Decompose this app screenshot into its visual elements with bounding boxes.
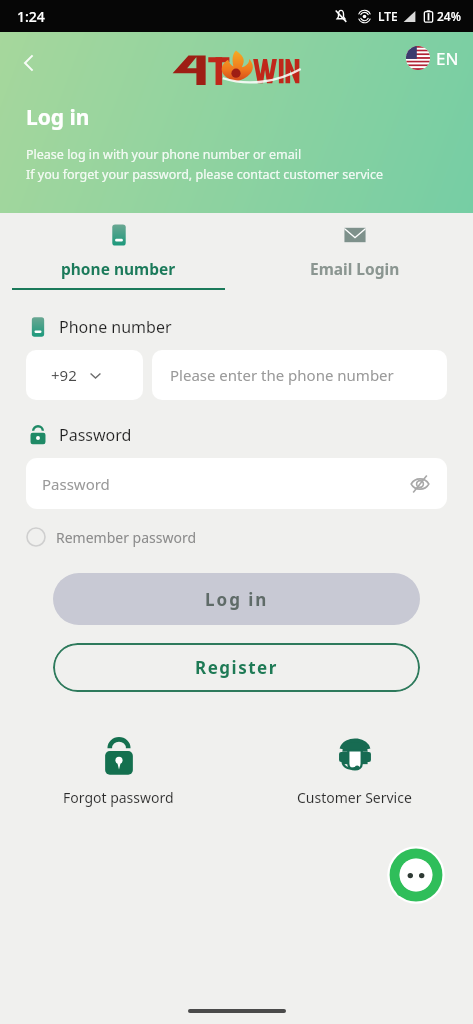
staticText: EN (436, 47, 459, 70)
staticText: Please log in with your phone number or … (26, 146, 302, 163)
staticText: phone number (61, 258, 176, 279)
button[interactable]: Show password (407, 471, 433, 497)
button[interactable]: Customer Service (291, 730, 418, 813)
button[interactable]: Log in (53, 573, 420, 625)
staticText: Log in (26, 103, 90, 132)
button[interactable]: Please enter the phone number (152, 350, 447, 400)
staticText: Password (59, 424, 132, 446)
staticText: Log in (205, 588, 269, 611)
staticText: 1:24 (17, 7, 45, 26)
staticText: If you forget your password, please cont… (26, 166, 384, 183)
staticText: Forgot password (63, 788, 174, 807)
staticText: LTE (378, 8, 398, 24)
button[interactable]: Live chat support (386, 845, 446, 905)
staticText: Phone number (59, 316, 172, 338)
button[interactable]: phone number (0, 213, 236, 290)
staticText: 24% (437, 8, 461, 24)
button[interactable]: Forgot password (57, 730, 180, 813)
button[interactable]: Password (26, 458, 447, 509)
staticText: Register (195, 656, 278, 679)
button[interactable]: Back (8, 42, 50, 84)
staticText: Remember password (56, 528, 197, 547)
staticText: Password (42, 474, 110, 494)
button[interactable]: +92 (26, 350, 143, 400)
button[interactable]: Remember password (26, 527, 197, 547)
staticText: Customer Service (297, 788, 412, 807)
staticText: Please enter the phone number (170, 365, 394, 385)
button[interactable]: Email Login (236, 213, 473, 288)
staticText: +92 (51, 365, 77, 385)
button[interactable]: Register (53, 643, 420, 692)
button[interactable]: EN (406, 46, 459, 70)
staticText: Email Login (310, 258, 400, 279)
